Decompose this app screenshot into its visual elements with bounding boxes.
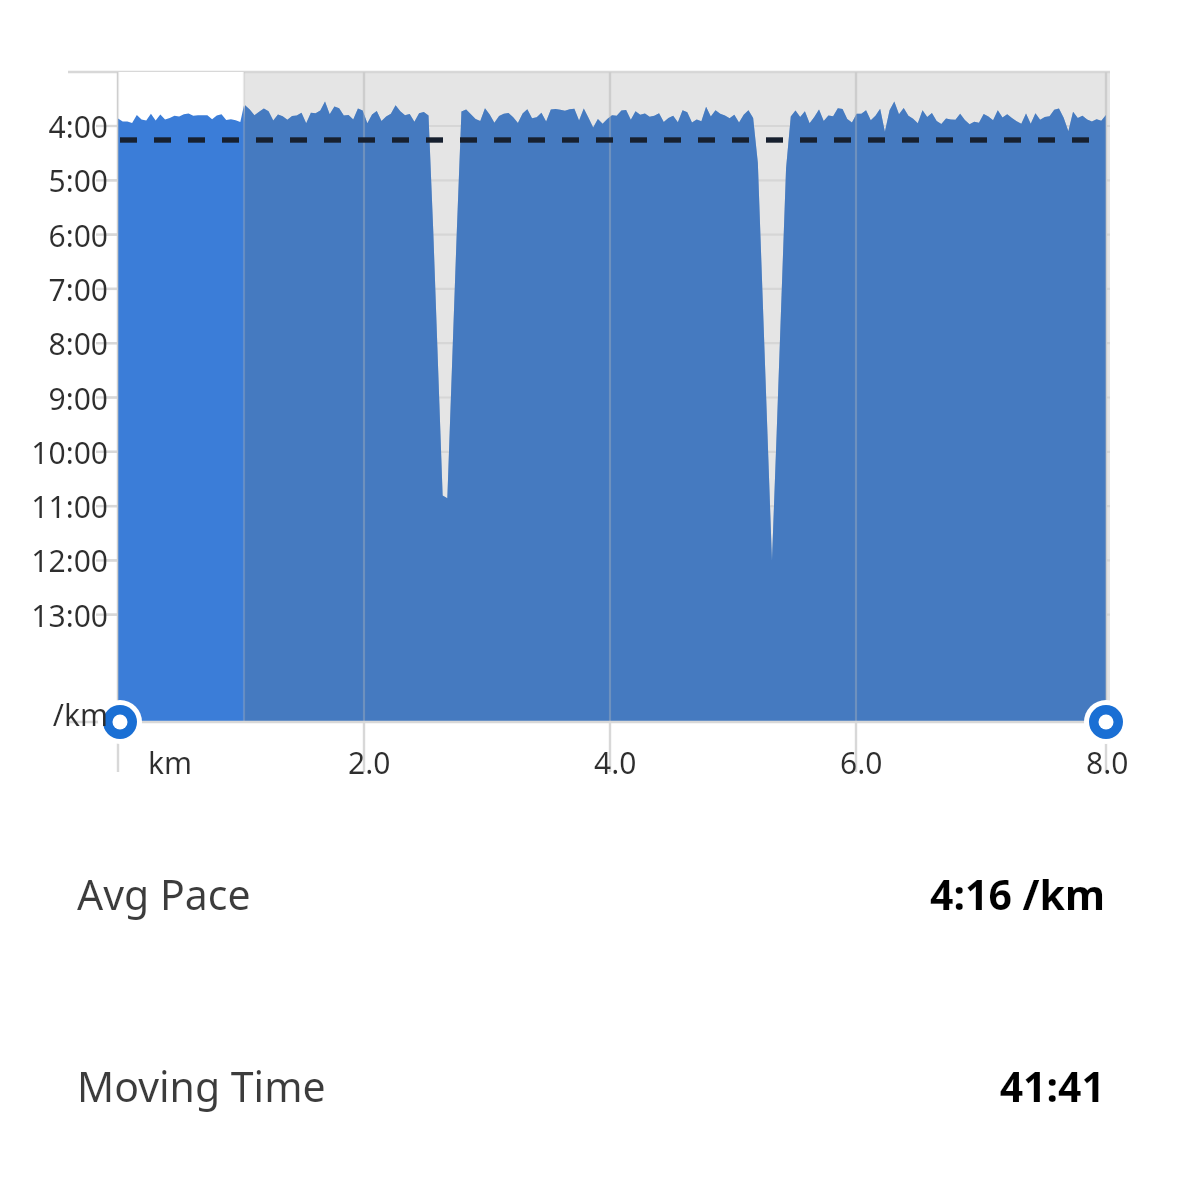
staticText: 5:00 [0,160,108,201]
staticText: 7:00 [0,269,108,310]
staticText: 10:00 [0,432,108,473]
staticText: /km [0,694,108,735]
staticText: 4:00 [0,106,108,147]
staticText: 4:16 /km [251,866,1105,922]
staticText: 8.0 [1086,742,1129,783]
staticText: 9:00 [0,378,108,419]
staticText: km [148,742,193,783]
staticText: 6.0 [840,742,883,783]
staticText: Avg Pace [77,866,251,922]
staticText: 12:00 [0,540,108,581]
staticText: 2.0 [348,742,391,783]
staticText: 41:41 [326,1058,1105,1114]
button[interactable]: Pace chart [0,0,1179,800]
staticText: 8:00 [0,323,108,364]
button[interactable]: Avg Pace [0,858,1179,930]
staticText: Moving Time [77,1058,326,1114]
staticText: 4.0 [594,742,637,783]
button[interactable]: Moving Time [0,1050,1179,1122]
staticText: 11:00 [0,486,108,527]
staticText: 6:00 [0,215,108,256]
staticText: 13:00 [0,595,108,636]
